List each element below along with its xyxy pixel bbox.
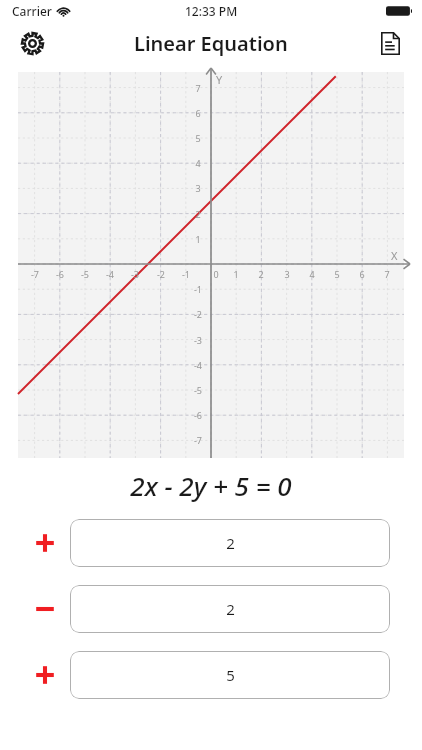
staticText: 6 <box>189 107 207 119</box>
button[interactable]: 2 <box>70 585 390 633</box>
button[interactable]: Settings <box>12 23 52 63</box>
staticText: 3 <box>189 182 207 194</box>
staticText: -5 <box>76 268 94 280</box>
staticText: -7 <box>26 268 44 280</box>
staticText: 1 <box>189 233 207 245</box>
staticText: Carrier <box>12 3 52 19</box>
button[interactable]: Minus <box>30 594 60 624</box>
button[interactable]: 5 <box>70 651 390 699</box>
staticText: 7 <box>189 82 207 94</box>
staticText: 5 <box>328 268 346 280</box>
staticText: Linear Equation <box>134 30 288 57</box>
staticText: -6 <box>189 409 207 421</box>
staticText: -4 <box>189 359 207 371</box>
staticText: -4 <box>101 268 119 280</box>
staticText: -1 <box>177 268 195 280</box>
staticText: 6 <box>353 268 371 280</box>
button[interactable]: 2 <box>70 519 390 567</box>
staticText: -7 <box>189 434 207 446</box>
staticText: 5 <box>226 665 235 685</box>
staticText: -3 <box>189 334 207 346</box>
staticText: 2 <box>189 208 207 220</box>
staticText: -5 <box>189 384 207 396</box>
staticText: -6 <box>51 268 69 280</box>
staticText: X <box>391 248 398 263</box>
staticText: 0 <box>213 268 219 280</box>
staticText: 1 <box>227 268 245 280</box>
staticText: 2 <box>226 599 235 619</box>
button[interactable]: Plus <box>30 528 60 558</box>
staticText: 3 <box>278 268 296 280</box>
staticText: 2x - 2y + 5 = 0 <box>0 468 422 503</box>
staticText: Y <box>216 72 223 87</box>
staticText: 4 <box>189 157 207 169</box>
staticText: -3 <box>126 268 144 280</box>
staticText: -2 <box>189 308 207 320</box>
staticText: 4 <box>303 268 321 280</box>
staticText: 2 <box>226 533 235 553</box>
staticText: 5 <box>189 132 207 144</box>
staticText: -1 <box>189 283 207 295</box>
staticText: 2 <box>252 268 270 280</box>
staticText: 7 <box>378 268 396 280</box>
staticText: -2 <box>152 268 170 280</box>
button[interactable]: Notes <box>370 23 410 63</box>
staticText: 12:33 PM <box>185 3 238 19</box>
button[interactable]: Plus <box>30 660 60 690</box>
